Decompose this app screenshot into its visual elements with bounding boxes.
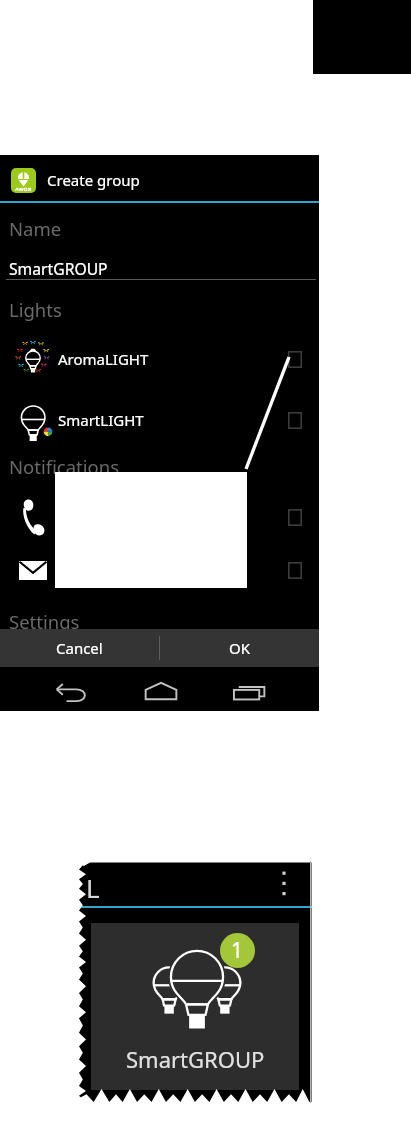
button[interactable]: SmartGROUP — [91, 923, 299, 1090]
button[interactable]: Back — [56, 684, 87, 702]
staticText: OK — [229, 638, 251, 658]
button[interactable] — [0, 494, 319, 540]
button[interactable]: SmartLIGHT — [0, 397, 319, 443]
staticText: Name — [9, 216, 62, 241]
staticText: SmartLIGHT — [58, 410, 144, 430]
staticText: Notifications — [9, 454, 120, 479]
button[interactable]: More options — [276, 868, 292, 898]
button[interactable]: OK — [160, 629, 319, 667]
staticText: Cancel — [56, 638, 103, 658]
staticText: SmartGROUP — [9, 258, 108, 279]
button[interactable]: Create group — [0, 160, 319, 200]
staticText: Settings — [9, 609, 80, 634]
staticText: Create group — [47, 170, 140, 190]
button[interactable]: Cancel — [0, 629, 159, 667]
button[interactable] — [0, 547, 319, 593]
staticText: SmartGROUP — [126, 1044, 265, 1074]
staticText: AromaLIGHT — [58, 349, 149, 369]
staticText: Lights — [9, 297, 62, 322]
staticText: 1 — [231, 936, 244, 965]
staticText: L — [86, 870, 100, 905]
button[interactable]: Recents — [233, 682, 265, 700]
button[interactable]: AromaLIGHT — [0, 336, 319, 382]
button[interactable]: Home — [145, 682, 177, 700]
